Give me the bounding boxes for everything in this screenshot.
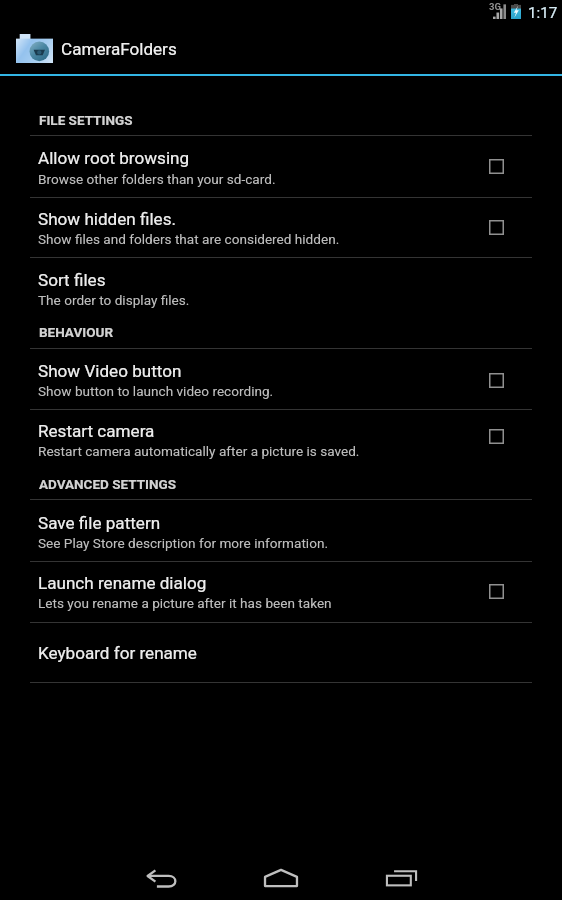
- staticText: ADVANCED SETTINGS: [39, 476, 177, 492]
- staticText: The order to display files.: [38, 292, 190, 308]
- staticText: Lets you rename a picture after it has b…: [38, 595, 332, 611]
- staticText: Sort files: [38, 270, 106, 290]
- staticText: Show hidden files.: [38, 209, 177, 229]
- staticText: Show Video button: [38, 361, 182, 381]
- staticText: Browse other folders than your sd-card.: [38, 171, 276, 187]
- button[interactable]: Sort files: [0, 257, 562, 317]
- staticText: Show files and folders that are consider…: [38, 231, 340, 247]
- button[interactable]: Restart camera: [0, 409, 562, 470]
- staticText: CameraFolders: [61, 39, 177, 59]
- button[interactable]: Launch rename dialog: [0, 561, 562, 622]
- button[interactable]: Back: [130, 855, 194, 900]
- staticText: Allow root browsing: [38, 148, 190, 168]
- staticText: Restart camera automatically after a pic…: [38, 443, 360, 459]
- staticText: 1:17: [528, 4, 558, 22]
- staticText: FILE SETTINGS: [39, 112, 133, 128]
- staticText: See Play Store description for more info…: [38, 535, 328, 551]
- button[interactable]: Save file pattern: [0, 499, 562, 561]
- staticText: Save file pattern: [38, 513, 161, 533]
- button[interactable]: Home: [249, 855, 313, 900]
- staticText: Keyboard for rename: [38, 643, 197, 663]
- button[interactable]: Show hidden files.: [0, 197, 562, 257]
- button[interactable]: Allow root browsing: [0, 135, 562, 197]
- staticText: Launch rename dialog: [38, 573, 207, 593]
- staticText: 3G: [489, 1, 501, 12]
- button[interactable]: Keyboard for rename: [0, 622, 562, 682]
- staticText: Show button to launch video recording.: [38, 383, 274, 399]
- staticText: Restart camera: [38, 421, 155, 441]
- staticText: BEHAVIOUR: [39, 324, 114, 340]
- button[interactable]: Show Video button: [0, 348, 562, 409]
- button[interactable]: Recent apps: [369, 855, 433, 900]
